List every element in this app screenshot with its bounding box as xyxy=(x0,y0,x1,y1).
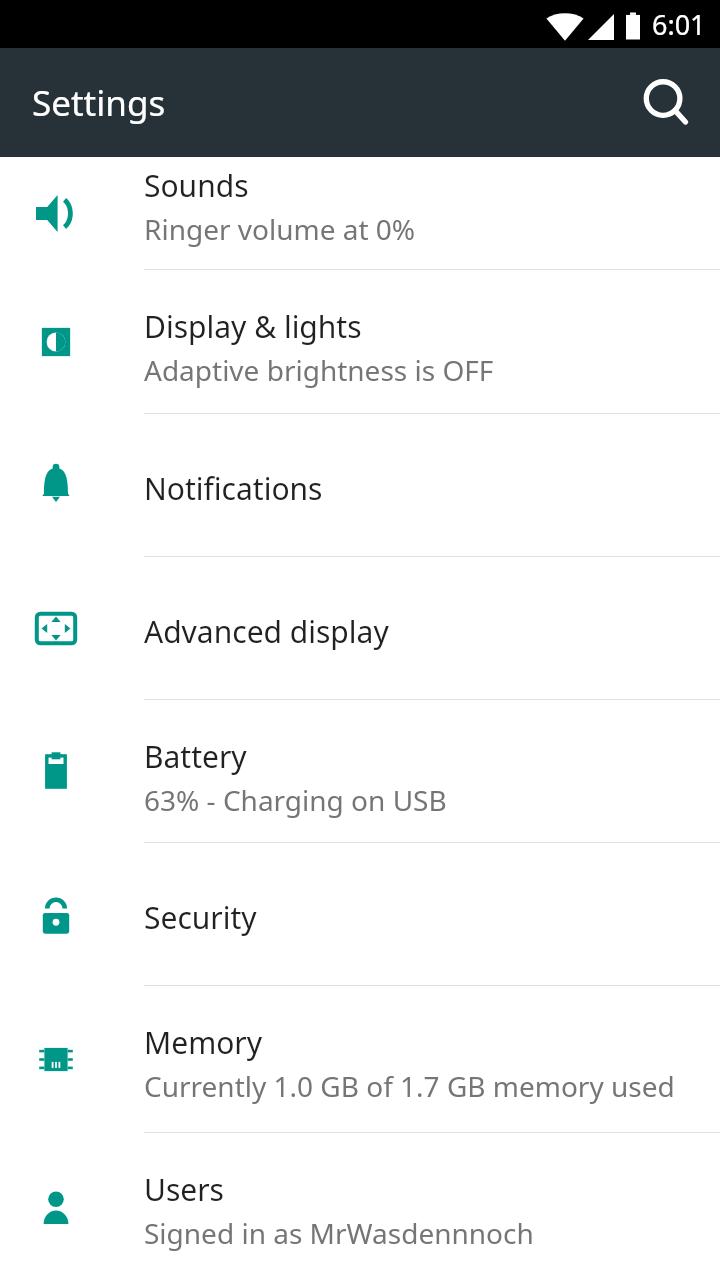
staticText: Signed in as MrWasdennnoch xyxy=(144,1214,534,1252)
button[interactable]: Security xyxy=(0,843,720,986)
staticText: Display & lights xyxy=(144,306,362,347)
staticText: Ringer volume at 0% xyxy=(144,210,416,248)
staticText: Users xyxy=(144,1169,224,1210)
staticText: Battery xyxy=(144,736,247,777)
button[interactable]: Search xyxy=(639,75,695,131)
button[interactable]: Battery xyxy=(0,700,720,843)
staticText: Notifications xyxy=(144,468,323,509)
staticText: Currently 1.0 GB of 1.7 GB memory used xyxy=(144,1067,675,1105)
staticText: Adaptive brightness is OFF xyxy=(144,351,494,389)
staticText: Advanced display xyxy=(144,611,389,652)
staticText: Memory xyxy=(144,1022,263,1063)
button[interactable]: Memory xyxy=(0,986,720,1133)
staticText: 6:01 xyxy=(652,6,706,43)
button[interactable]: Advanced display xyxy=(0,557,720,700)
staticText: 63% - Charging on USB xyxy=(144,781,447,819)
staticText: Sounds xyxy=(144,165,249,206)
button[interactable]: Sounds xyxy=(0,157,720,270)
button[interactable]: Display & lights xyxy=(0,270,720,414)
staticText: Security xyxy=(144,897,257,938)
button[interactable]: Notifications xyxy=(0,414,720,557)
button[interactable]: Users xyxy=(0,1133,720,1280)
staticText: Settings xyxy=(32,79,166,127)
